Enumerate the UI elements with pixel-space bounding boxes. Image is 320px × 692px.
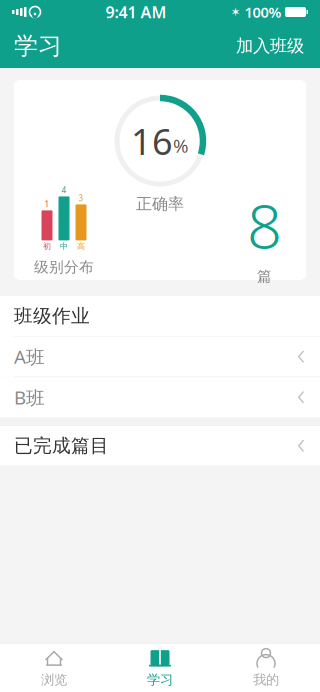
staticText: 学习 bbox=[147, 672, 173, 688]
staticText: 正确率 bbox=[136, 194, 184, 214]
button[interactable]: 加入班级 bbox=[234, 27, 306, 65]
staticText: 级别分布 bbox=[34, 258, 94, 276]
staticText: 篇 bbox=[257, 267, 272, 285]
button[interactable]: B班 bbox=[0, 377, 320, 417]
staticText: 100% bbox=[244, 2, 281, 22]
staticText: 中 bbox=[60, 241, 68, 251]
staticText: 我的 bbox=[253, 672, 279, 688]
staticText: ✶ bbox=[230, 5, 240, 19]
staticText: 1 bbox=[44, 199, 49, 209]
staticText: 加入班级 bbox=[236, 35, 304, 57]
staticText: 初 bbox=[43, 241, 51, 251]
staticText: 3 bbox=[78, 193, 83, 203]
staticText: B班 bbox=[14, 385, 45, 410]
staticText: 9:41 AM bbox=[105, 1, 166, 23]
staticText: A班 bbox=[14, 344, 45, 369]
button[interactable]: A班 bbox=[0, 337, 320, 377]
button[interactable]: 学习 bbox=[107, 644, 213, 692]
staticText: 8 bbox=[247, 184, 282, 265]
staticText: 班级作业 bbox=[14, 304, 90, 327]
button[interactable]: 我的 bbox=[213, 644, 319, 692]
staticText: % bbox=[173, 133, 189, 158]
button[interactable]: 已完成篇目 bbox=[0, 426, 320, 466]
staticText: 4 bbox=[61, 185, 66, 195]
staticText: 已完成篇目 bbox=[14, 434, 109, 457]
button[interactable]: 浏览 bbox=[1, 644, 107, 692]
staticText: 浏览 bbox=[41, 672, 67, 688]
staticText: 16 bbox=[131, 117, 173, 165]
staticText: 学习 bbox=[14, 31, 62, 61]
staticText: 高 bbox=[77, 241, 85, 251]
